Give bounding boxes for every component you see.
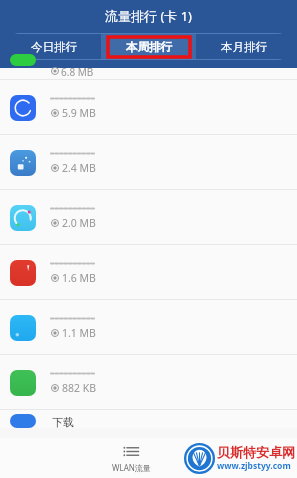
staticText: 5.9 MB (62, 106, 96, 120)
staticText: 流量排行 (卡 1) (105, 7, 192, 25)
staticText: 2.0 MB (62, 216, 96, 230)
button[interactable]: 今日排行 (6, 33, 101, 60)
staticText: 今日排行 (31, 40, 77, 54)
button[interactable]: 下载 (0, 410, 297, 428)
button[interactable]: 1.6 MB (0, 245, 297, 300)
button[interactable]: WLAN流量 (112, 443, 151, 473)
button[interactable]: 2.4 MB (0, 135, 297, 190)
staticText: 882 KB (62, 381, 97, 395)
button[interactable]: 6.8 MB (0, 68, 297, 80)
staticText: 下载 (52, 415, 74, 428)
staticText: 本周排行 (126, 40, 172, 54)
button[interactable]: 本月排行 (196, 33, 291, 60)
staticText: 2.4 MB (62, 161, 96, 175)
button[interactable]: 1.1 MB (0, 300, 297, 355)
button[interactable]: 882 KB (0, 355, 297, 410)
button[interactable]: 2.0 MB (0, 190, 297, 245)
staticText: 6.8 MB (61, 65, 94, 77)
button[interactable]: 5.9 MB (0, 80, 297, 135)
staticText: WLAN流量 (112, 462, 151, 473)
staticText: 本月排行 (221, 40, 267, 54)
staticText: 1.1 MB (62, 326, 96, 340)
staticText: 贝斯特安卓网 (217, 444, 295, 460)
staticText: 1.6 MB (62, 271, 96, 285)
button[interactable]: 本周排行 (101, 33, 196, 60)
staticText: www.zjbstyy.com (217, 460, 291, 472)
